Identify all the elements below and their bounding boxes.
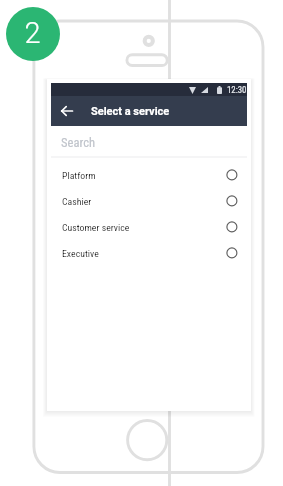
button[interactable]: 2 (6, 7, 60, 61)
staticText: Executive (62, 248, 99, 259)
button[interactable]: Search (51, 126, 247, 158)
staticText: Platform (62, 170, 96, 181)
staticText: 12:30 (227, 85, 247, 95)
staticText: Customer service (62, 222, 130, 233)
button[interactable]: Executive (51, 240, 247, 266)
staticText: Select a service (91, 105, 170, 118)
staticText: Cashier (62, 196, 92, 207)
button[interactable]: Platform (51, 162, 247, 188)
staticText: 2 (24, 16, 41, 50)
button[interactable]: Customer service (51, 214, 247, 240)
button[interactable]: Back (60, 104, 74, 118)
button[interactable]: Cashier (51, 188, 247, 214)
staticText: Search (61, 135, 96, 150)
